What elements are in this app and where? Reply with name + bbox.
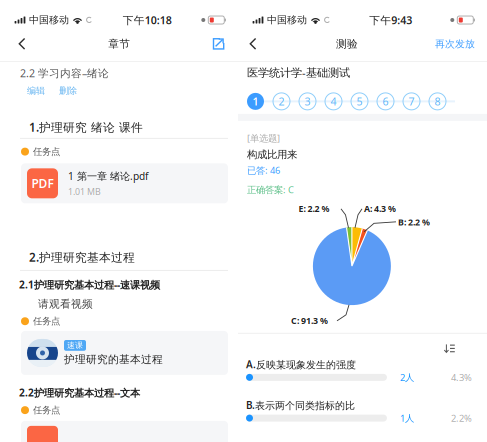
staticText: 章节 [108,37,130,50]
staticText: E: 2.2 % [298,203,329,214]
staticText: 正确答案: C [247,183,294,196]
staticText: 4 [330,94,336,108]
staticText: 任务点 [33,315,60,327]
staticText: 护理研究的基本过程 [64,353,163,366]
button[interactable]: 排序 [440,340,459,357]
button[interactable]: 删除 [59,85,77,96]
staticText: 5 [356,94,362,108]
staticText: 下午10:18 [123,13,172,27]
staticText: 8 [434,94,440,108]
button[interactable]: 返回 [238,32,267,55]
staticText: 任务点 [33,146,60,157]
staticText: 删除 [59,85,77,96]
button[interactable]: 5 [351,93,368,110]
staticText: 1.护理研究 绪论 课件 [29,119,143,135]
button[interactable]: 7 [403,93,420,110]
staticText: 1 [252,94,258,108]
staticText: 4.3% [451,371,472,384]
staticText: 1人 [400,412,414,424]
button[interactable]: PDF [21,163,228,203]
staticText: 3 [304,94,310,108]
staticText: 任务点 [33,404,60,416]
button[interactable]: 2 [273,93,290,110]
staticText: 编辑 [27,85,45,96]
staticText: 1.01 MB [68,186,101,197]
staticText: 医学统计学-基础测试 [247,65,350,80]
staticText: [单选题] [247,132,280,144]
staticText: 中国移动 [267,14,307,26]
staticText: 2.2护理研究基本过程--文本 [19,386,140,399]
staticText: 1 第一章 绪论.pdf [68,169,148,183]
staticText: 测验 [336,37,358,50]
staticText: 2人 [400,371,414,384]
staticText: 7 [408,94,414,108]
staticText: 2.2 学习内容–绪论 [20,66,109,80]
button[interactable]: 返回 [0,32,36,55]
button[interactable]: 6 [377,93,394,110]
staticText: PDF [31,175,53,191]
button[interactable]: 再次发放 [427,33,487,55]
staticText: 2.1护理研究基本过程--速课视频 [19,278,160,291]
staticText: 再次发放 [435,38,475,50]
staticText: 2.2% [451,412,472,424]
staticText: 构成比用来 [247,148,297,161]
staticText: 请观看视频 [38,297,93,310]
button[interactable]: 8 [429,93,446,110]
staticText: 2 [278,94,284,108]
button[interactable]: 编辑 [27,85,45,96]
button[interactable]: 3 [299,93,316,110]
staticText: 速课 [67,340,83,350]
staticText: 中国移动 [29,14,69,26]
staticText: 6 [382,94,388,108]
staticText: C: 91.3 % [291,315,328,326]
staticText: 2.护理研究基本过程 [29,249,135,265]
button[interactable]: 分享 [202,33,238,55]
staticText: 下午9:43 [369,13,412,27]
button[interactable]: 速课 [21,331,228,375]
staticText: B: 2.2 % [398,216,430,228]
button[interactable]: 4 [325,93,342,110]
staticText: A: 4.3 % [364,203,396,214]
button[interactable]: 1 [247,93,264,110]
staticText: B.表示两个同类指标的比 [246,399,355,412]
staticText: A.反映某现象发生的强度 [246,358,356,371]
staticText: 已答: 46 [247,164,280,176]
